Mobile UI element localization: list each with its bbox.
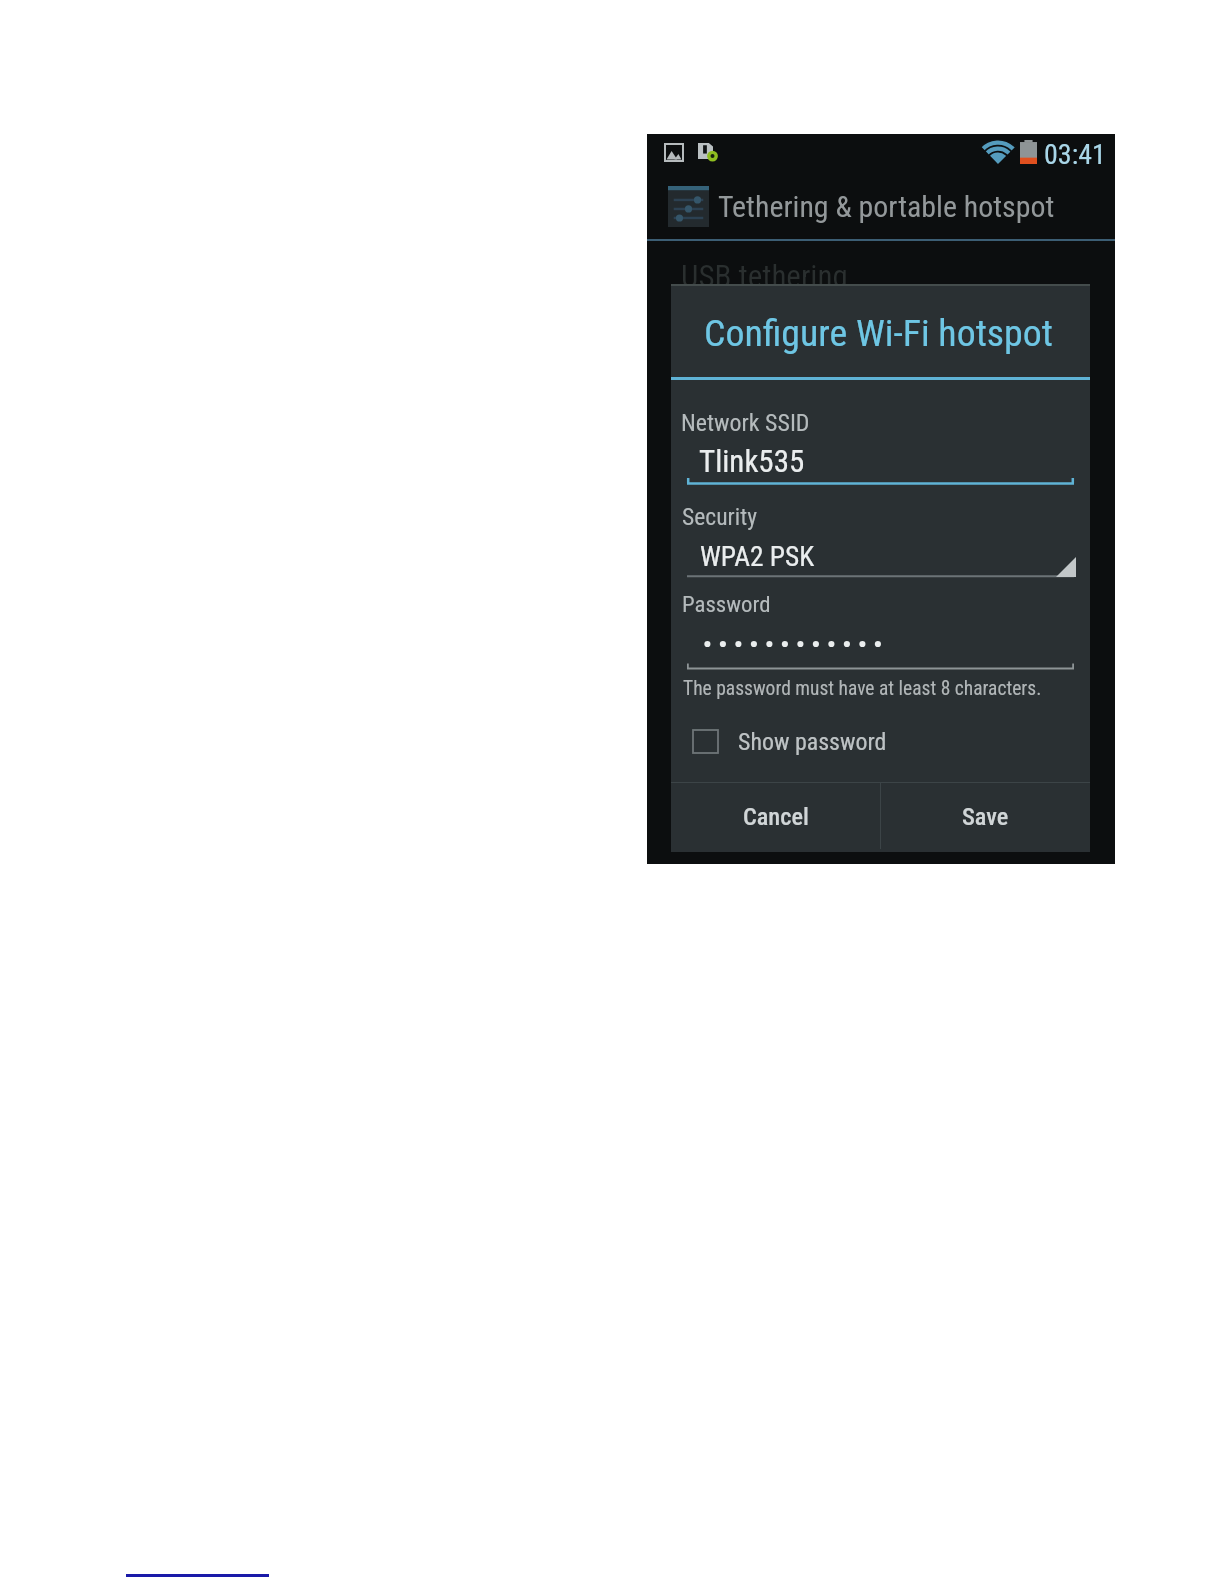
staticText: USB tethering xyxy=(681,258,848,294)
staticText: WPA2 PSK xyxy=(700,541,815,573)
button[interactable]: Save xyxy=(881,782,1090,849)
button[interactable]: Security xyxy=(682,496,1076,580)
button[interactable]: USB tethering xyxy=(647,246,1115,310)
staticText: Password xyxy=(682,591,771,618)
staticText: Tlink535 xyxy=(699,443,805,479)
staticText: Show password xyxy=(738,728,887,756)
staticText: Tethering & portable hotspot xyxy=(718,189,1055,224)
staticText: The password must have at least 8 charac… xyxy=(683,677,1042,700)
staticText: Configure Wi-Fi hotspot xyxy=(704,311,1053,355)
staticText: Save xyxy=(962,802,1009,830)
staticText: Security xyxy=(682,503,758,531)
button[interactable]: Tethering & portable hotspot, navigate u… xyxy=(647,174,1115,238)
staticText: 03:41 xyxy=(1044,138,1106,171)
button[interactable]: Cancel xyxy=(671,782,880,849)
staticText: Cancel xyxy=(743,802,809,830)
staticText: Network SSID xyxy=(681,409,810,437)
button[interactable]: Password xyxy=(682,584,1076,670)
button[interactable]: Network SSID xyxy=(681,400,1076,486)
button[interactable]: Show password xyxy=(689,717,909,767)
